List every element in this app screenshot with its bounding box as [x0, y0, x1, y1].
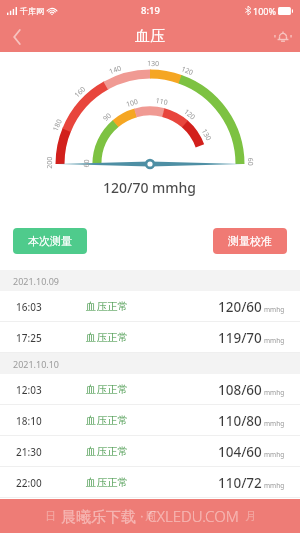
staticText: 血压正常 — [86, 414, 128, 427]
staticText: 2021.10.10 — [13, 358, 60, 370]
button[interactable]: 16:03 — [0, 291, 300, 322]
staticText: 日 — [45, 509, 56, 523]
staticText: 17:25 — [16, 331, 42, 345]
staticText: 8:19 — [141, 4, 160, 17]
staticText: 血压正常 — [86, 331, 128, 344]
staticText: 血压正常 — [86, 445, 128, 458]
staticText: 测量校准 — [228, 234, 272, 248]
staticText: 血压 — [135, 27, 165, 46]
staticText: 110/80 — [218, 412, 262, 430]
staticText: 千库网 — [20, 6, 44, 16]
staticText: 110/72 — [218, 474, 262, 492]
button[interactable]: 17:25 — [0, 322, 300, 353]
staticText: mmhg — [264, 450, 285, 459]
staticText: 22:00 — [16, 476, 42, 490]
button[interactable]: 12:03 — [0, 374, 300, 405]
staticText: 18:10 — [16, 414, 42, 428]
staticText: mmhg — [264, 305, 285, 314]
button[interactable]: Back — [0, 21, 34, 52]
staticText: 16:03 — [16, 300, 42, 314]
staticText: mmhg — [264, 336, 285, 345]
staticText: 104/60 — [218, 443, 262, 461]
staticText: mmhg — [264, 388, 285, 397]
button[interactable]: 测量校准 — [213, 228, 287, 254]
staticText: 12:03 — [16, 383, 42, 397]
staticText: 120/60 — [218, 298, 262, 316]
staticText: 晨曦乐下载 · CXLEDU.COM — [61, 506, 239, 526]
button[interactable]: 22:00 — [0, 467, 300, 498]
staticText: 100% — [253, 5, 276, 17]
staticText: 血压正常 — [86, 300, 128, 313]
button[interactable]: 日 — [0, 499, 100, 533]
staticText: mmhg — [264, 481, 285, 490]
staticText: 周 — [145, 509, 156, 523]
staticText: 21:30 — [16, 445, 42, 459]
staticText: mmhg — [264, 419, 285, 428]
staticText: 血压正常 — [86, 476, 128, 489]
button[interactable]: 18:10 — [0, 405, 300, 436]
staticText: 月 — [245, 509, 256, 523]
button[interactable]: 本次测量 — [13, 228, 87, 254]
staticText: 120/70 mmhg — [103, 178, 197, 197]
button[interactable]: 月 — [200, 499, 300, 533]
staticText: 2021.10.09 — [13, 275, 60, 287]
button[interactable]: 21:30 — [0, 436, 300, 467]
staticText: 108/60 — [218, 381, 262, 399]
staticText: 本次测量 — [28, 234, 72, 248]
button[interactable]: Notifications — [266, 21, 300, 52]
staticText: 119/70 — [218, 329, 262, 347]
button[interactable]: 周 — [100, 499, 200, 533]
staticText: 血压正常 — [86, 383, 128, 396]
